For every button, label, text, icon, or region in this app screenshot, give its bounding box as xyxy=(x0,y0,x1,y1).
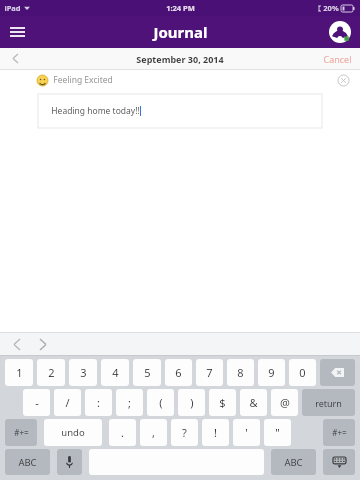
staticText: ( xyxy=(159,395,163,410)
button[interactable]: . xyxy=(109,419,136,446)
button[interactable]: / xyxy=(54,389,81,416)
staticText: . xyxy=(121,425,124,440)
staticText: return xyxy=(315,397,342,409)
button[interactable]: 8 xyxy=(227,359,254,386)
staticText: Journal xyxy=(153,22,208,42)
button[interactable]: Backspace xyxy=(320,359,355,386)
button[interactable]: & xyxy=(240,389,267,416)
staticText: , xyxy=(152,425,155,440)
staticText: ' xyxy=(245,425,248,440)
staticText: 6 xyxy=(175,365,182,380)
staticText: ABC xyxy=(284,456,303,469)
button[interactable]: Next field xyxy=(32,333,54,355)
button[interactable]: Dictate xyxy=(57,449,82,475)
button[interactable]: - xyxy=(23,389,50,416)
button[interactable]: undo xyxy=(44,419,102,446)
button[interactable]: ( xyxy=(147,389,174,416)
staticText: - xyxy=(35,395,39,410)
button[interactable]: #+= xyxy=(5,419,37,446)
staticText: 1 xyxy=(16,365,23,380)
button[interactable]: Menu xyxy=(0,16,34,48)
staticText: 1:24 PM xyxy=(166,3,195,13)
staticText: 2 xyxy=(48,365,55,380)
button[interactable]: ' xyxy=(233,419,260,446)
button[interactable]: #+= xyxy=(323,419,355,446)
staticText: 5 xyxy=(144,365,151,380)
staticText: 0 xyxy=(299,365,306,380)
staticText: 7 xyxy=(206,365,213,380)
button[interactable]: Feeling Excited xyxy=(32,70,322,90)
button[interactable]: 0 xyxy=(289,359,316,386)
staticText: Feeling Excited xyxy=(53,74,113,86)
button[interactable]: ? xyxy=(171,419,198,446)
button[interactable]: Hide keyboard xyxy=(323,449,355,475)
button[interactable]: 5 xyxy=(133,359,161,386)
staticText: 4 xyxy=(112,365,119,380)
staticText: undo xyxy=(61,426,85,439)
button[interactable]: 9 xyxy=(258,359,285,386)
button[interactable]: 6 xyxy=(165,359,192,386)
button[interactable]: $ xyxy=(209,389,236,416)
button[interactable]: 3 xyxy=(69,359,97,386)
button[interactable]: 1 xyxy=(5,359,33,386)
button[interactable]: Clear mood xyxy=(335,72,351,88)
button[interactable]: ! xyxy=(202,419,229,446)
staticText: #+= xyxy=(14,427,29,438)
button[interactable]: : xyxy=(85,389,112,416)
staticText: 20% xyxy=(323,3,339,13)
staticText: September 30, 2014 xyxy=(136,53,224,65)
button[interactable]: 4 xyxy=(101,359,129,386)
staticText: $ xyxy=(219,395,226,410)
staticText: & xyxy=(249,395,258,410)
staticText: #+= xyxy=(332,427,347,438)
button[interactable]: Heading home today!! xyxy=(38,94,322,128)
staticText: iPad xyxy=(4,3,21,13)
button[interactable]: return xyxy=(302,389,355,416)
button[interactable]: ABC xyxy=(271,449,316,475)
staticText: @ xyxy=(280,395,290,410)
button[interactable]: , xyxy=(140,419,167,446)
staticText: ! xyxy=(214,425,217,440)
staticText: ? xyxy=(182,425,187,440)
staticText: ABC xyxy=(18,456,37,469)
button[interactable]: ; xyxy=(116,389,143,416)
staticText: Cancel xyxy=(323,53,352,65)
button[interactable]: @ xyxy=(271,389,298,416)
button[interactable]: Cancel xyxy=(323,48,360,69)
button[interactable]: ) xyxy=(178,389,205,416)
staticText: : xyxy=(97,395,100,410)
staticText: 8 xyxy=(237,365,244,380)
button[interactable]: 2 xyxy=(37,359,65,386)
staticText: 9 xyxy=(268,365,275,380)
button[interactable]: 7 xyxy=(196,359,223,386)
button[interactable]: ABC xyxy=(5,449,50,475)
button[interactable]: Previous field xyxy=(6,333,28,355)
staticText: Heading home today!! xyxy=(51,105,140,117)
staticText: " xyxy=(275,425,280,440)
staticText: / xyxy=(65,395,70,410)
button[interactable]: " xyxy=(264,419,291,446)
staticText: ; xyxy=(128,395,131,410)
button[interactable]: Profile xyxy=(328,20,352,44)
staticText: ) xyxy=(190,395,194,410)
staticText: 3 xyxy=(80,365,87,380)
button[interactable]: Back xyxy=(0,48,30,69)
